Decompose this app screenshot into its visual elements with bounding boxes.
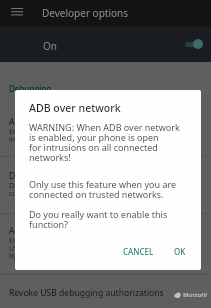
staticText: WARNING: When ADB over network is enable… [29, 121, 180, 163]
button[interactable]: Android debugging [0, 225, 211, 261]
staticText: Enable debug mode when USB is connected,… [9, 236, 95, 260]
staticText: OK [174, 246, 186, 257]
staticText: CANCEL [123, 246, 154, 257]
button[interactable]: Developer options [0, 170, 211, 199]
button[interactable]: OK [173, 242, 187, 261]
staticText: Enable adb over network interface [9, 127, 91, 144]
staticText: Revoke USB debugging authorizations [9, 287, 164, 299]
staticText: ADB over network [29, 101, 121, 115]
button[interactable]: On [0, 26, 211, 62]
staticText: Only use this feature when you are conne… [29, 178, 177, 200]
staticText: Debugging [9, 83, 52, 94]
staticText: On [43, 39, 57, 53]
staticText: Developer options are currently enabled [9, 181, 82, 198]
staticText: Do you really want to enable this functi… [29, 208, 168, 230]
staticText: Android debugging [9, 225, 88, 237]
staticText: Developer options [9, 170, 83, 182]
button[interactable]: CANCEL [122, 242, 155, 261]
staticText: MottoiV [183, 291, 208, 299]
staticText: ADB over network [9, 116, 82, 128]
staticText: Developer options [42, 6, 129, 20]
button[interactable]: ADB over network [0, 116, 211, 145]
button[interactable]: Menu [5, 0, 29, 24]
button[interactable]: Revoke USB debugging authorizations [0, 287, 211, 299]
